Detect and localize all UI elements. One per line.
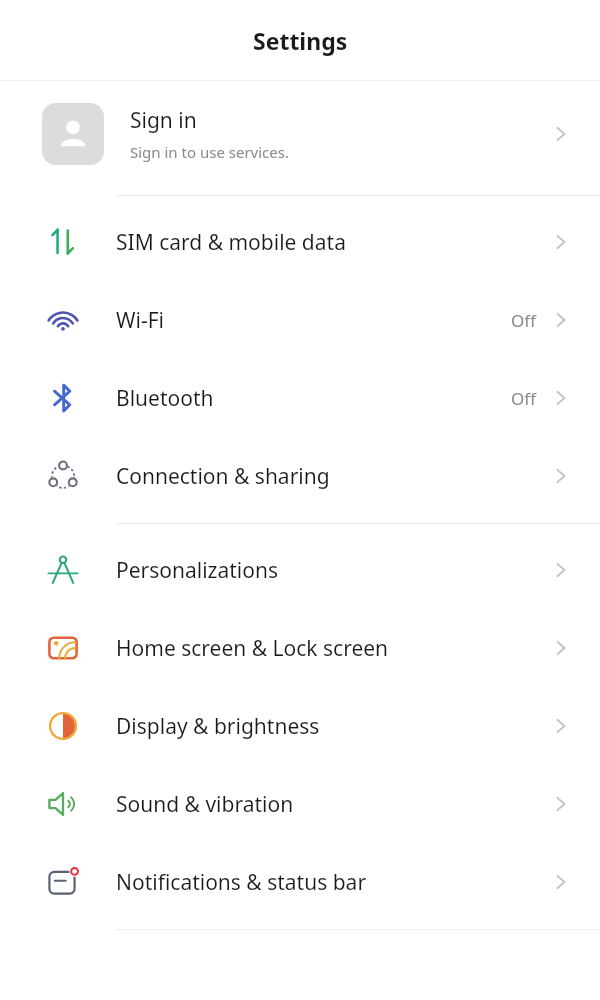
- staticText: Bluetooth: [116, 384, 214, 413]
- staticText: Display & brightness: [116, 712, 320, 741]
- staticText: SIM card & mobile data: [116, 228, 346, 257]
- staticText: Connection & sharing: [116, 462, 330, 491]
- button[interactable]: Wi-Fi: [0, 281, 600, 359]
- staticText: Sound & vibration: [116, 790, 294, 819]
- button[interactable]: Sound & vibration: [0, 765, 600, 843]
- button[interactable]: Notifications & status bar: [0, 843, 600, 921]
- button[interactable]: Sign in: [0, 81, 600, 187]
- staticText: Off: [511, 309, 536, 332]
- staticText: Sign in to use services.: [130, 142, 289, 162]
- staticText: Settings: [253, 25, 348, 56]
- staticText: Wi-Fi: [116, 306, 165, 335]
- button[interactable]: Personalizations: [0, 531, 600, 609]
- button[interactable]: Home screen & Lock screen: [0, 609, 600, 687]
- button[interactable]: SIM card & mobile data: [0, 203, 600, 281]
- button[interactable]: Bluetooth: [0, 359, 600, 437]
- staticText: Notifications & status bar: [116, 868, 367, 897]
- staticText: Home screen & Lock screen: [116, 634, 389, 663]
- staticText: Personalizations: [116, 556, 278, 585]
- button[interactable]: Connection & sharing: [0, 437, 600, 515]
- staticText: Off: [511, 387, 536, 410]
- staticText: Sign in: [130, 106, 197, 135]
- button[interactable]: Display & brightness: [0, 687, 600, 765]
